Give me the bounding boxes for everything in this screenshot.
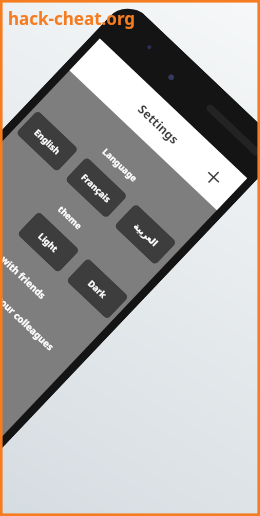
staticText: العربية	[132, 221, 160, 248]
staticText: Français	[79, 171, 113, 205]
button[interactable]: Add	[199, 163, 228, 192]
button[interactable]: English	[16, 110, 79, 172]
staticText: Light	[36, 230, 61, 255]
staticText: Share this app with your colleagues	[0, 228, 57, 353]
staticText: Settings	[134, 101, 182, 148]
button[interactable]: Dark	[66, 258, 129, 320]
button[interactable]: العربية	[114, 203, 177, 265]
staticText: theme	[55, 203, 85, 232]
staticText: hack-cheat.org	[8, 7, 136, 30]
button[interactable]: Light	[17, 211, 80, 273]
staticText: Language	[100, 145, 140, 184]
staticText: English	[31, 126, 63, 157]
staticText: Dark	[85, 277, 109, 301]
button[interactable]: Français	[65, 157, 128, 219]
staticText: Share this app with friends	[0, 205, 49, 302]
